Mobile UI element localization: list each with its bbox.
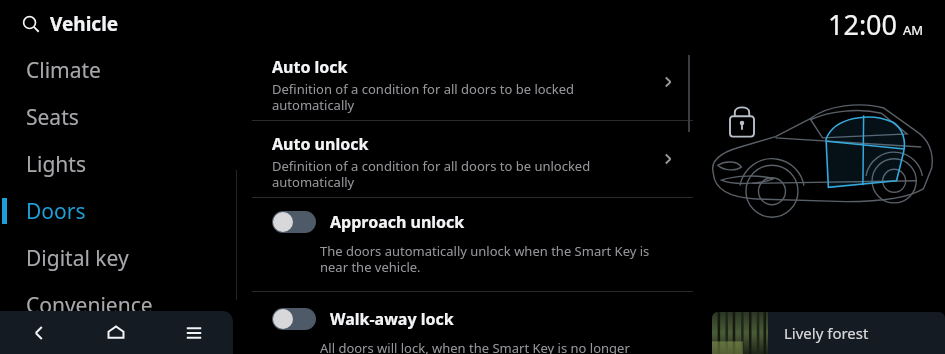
staticText: Definition of a condition for all doors … [272,157,591,190]
other: Back [29,323,49,343]
button[interactable]: Toggle off [272,308,316,330]
staticText: Lights [26,150,86,179]
staticText: AM [903,21,924,39]
button[interactable]: Home [77,311,155,354]
button[interactable]: Convenience [0,283,237,327]
staticText: Doors [26,197,86,226]
button[interactable]: Lively forest [712,312,945,354]
staticText: Climate [26,56,101,85]
staticText: All doors will lock, when the Smart Key … [320,339,630,354]
button[interactable]: Doors [0,189,237,233]
other: Home [105,322,127,344]
staticText: Auto unlock [272,133,369,155]
button[interactable]: Search [18,8,123,40]
button[interactable]: Toggle off [252,292,693,354]
button[interactable]: Menu [155,311,233,354]
other: Locked [727,105,757,139]
button[interactable]: Climate [0,48,237,92]
staticText: Auto lock [272,56,348,78]
button[interactable]: Seats [0,95,237,139]
staticText: Approach unlock [330,211,465,233]
other: Menu [184,323,204,343]
staticText: The doors automatically unlock when the … [320,242,650,275]
staticText: Walk-away lock [330,308,454,330]
staticText: Convenience [26,291,153,320]
button[interactable]: Back [0,311,77,354]
button[interactable]: Auto unlock [252,121,693,197]
button[interactable]: Digital key [0,236,237,280]
staticText: Definition of a condition for all doors … [272,80,575,113]
staticText: Vehicle [50,11,119,37]
staticText: Lively forest [784,323,869,343]
staticText: Seats [26,103,79,132]
staticText: 12:00 [828,6,898,43]
button[interactable]: Auto lock [252,44,693,120]
staticText: Digital key [26,244,129,273]
button[interactable]: Toggle off [272,211,316,233]
button[interactable]: Lights [0,142,237,186]
other: Search [22,15,40,33]
button[interactable]: Toggle off [252,198,693,291]
